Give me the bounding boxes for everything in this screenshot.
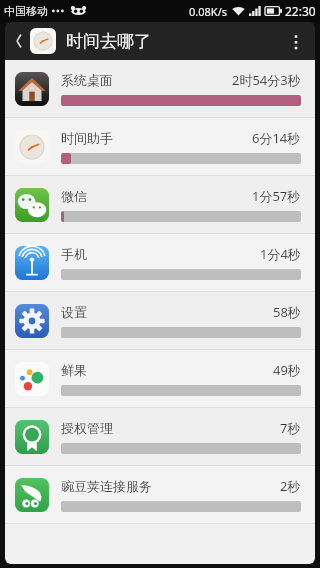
staticText: 时间助手 [61,130,113,146]
staticText: 时间去哪了 [66,31,151,52]
button[interactable]: 手机 [5,234,315,292]
staticText: 6分14秒 [252,129,301,147]
button[interactable]: 豌豆荚连接服务 [5,466,315,524]
staticText: 22:30 [285,3,316,19]
staticText: 系统桌面 [61,72,113,88]
staticText: 授权管理 [61,420,113,436]
button[interactable]: More options [277,22,315,60]
staticText: 鲜果 [61,362,87,378]
button[interactable]: 微信 [5,176,315,234]
staticText: 58秒 [273,303,301,321]
staticText: 豌豆荚连接服务 [61,478,152,494]
other: Back [9,32,27,50]
staticText: 设置 [61,304,87,320]
button[interactable]: 时间助手 [5,118,315,176]
staticText: 1分4秒 [260,245,301,263]
staticText: 微信 [61,188,87,204]
staticText: 7秒 [280,419,301,437]
button[interactable]: 设置 [5,292,315,350]
staticText: 中国移动 [4,4,48,18]
button[interactable]: 鲜果 [5,350,315,408]
staticText: 手机 [61,246,87,262]
staticText: 2秒 [280,477,301,495]
staticText: 0.08K/s [189,4,227,19]
staticText: 49秒 [273,361,301,379]
staticText: 1分57秒 [252,187,301,205]
button[interactable]: 系统桌面 [5,60,315,118]
button[interactable]: 授权管理 [5,408,315,466]
staticText: 2时54分3秒 [232,71,301,89]
button[interactable]: Back [5,22,159,60]
